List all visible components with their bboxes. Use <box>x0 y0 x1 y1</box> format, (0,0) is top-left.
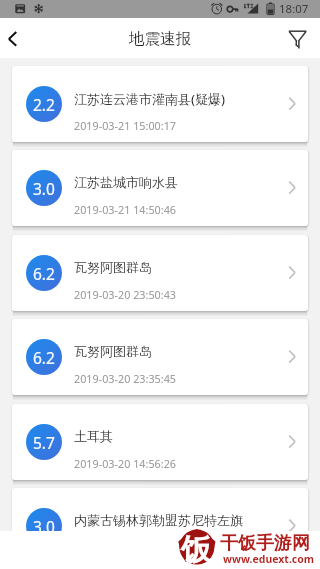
button[interactable]: 6.2 <box>12 235 308 311</box>
staticText: 6.2 <box>33 347 55 368</box>
staticText: www.eduext.com <box>223 552 315 566</box>
staticText: 2019-03-21 14:50:46 <box>74 202 177 217</box>
staticText: 3.0 <box>33 178 55 199</box>
staticText: 5.7 <box>33 432 55 453</box>
button[interactable]: 3.0 <box>12 488 308 564</box>
staticText: 2.2 <box>33 94 55 115</box>
button[interactable]: Back <box>0 18 28 58</box>
staticText: 地震速报 <box>129 29 191 49</box>
staticText: 2019-03-20 23:35:45 <box>74 371 177 386</box>
button[interactable]: 5.7 <box>12 404 308 480</box>
button[interactable]: 6.2 <box>12 319 308 395</box>
staticText: 瓦努阿图群岛 <box>74 343 152 359</box>
staticText: 江苏连云港市灌南县(疑爆) <box>74 90 226 108</box>
staticText: 饭 <box>181 531 211 569</box>
staticText: 干饭手游网 <box>220 532 310 555</box>
staticText: 瓦努阿图群岛 <box>74 259 152 275</box>
staticText: 江苏盐城市响水县 <box>74 174 178 190</box>
button[interactable]: 3.0 <box>12 150 308 226</box>
staticText: 18:07 <box>279 1 309 17</box>
staticText: 2019-03-20 23:50:43 <box>74 287 177 302</box>
button[interactable]: Filter <box>280 18 320 58</box>
staticText: 3.0 <box>33 516 55 537</box>
staticText: 土耳其 <box>74 428 113 444</box>
staticText: 内蒙古锡林郭勒盟苏尼特左旗 <box>74 512 243 528</box>
staticText: 2019-03-20 14:56:26 <box>74 456 177 471</box>
staticText: 6.2 <box>33 263 55 284</box>
button[interactable]: 2.2 <box>12 66 308 142</box>
staticText: 2019-03-21 15:00:17 <box>74 118 177 133</box>
